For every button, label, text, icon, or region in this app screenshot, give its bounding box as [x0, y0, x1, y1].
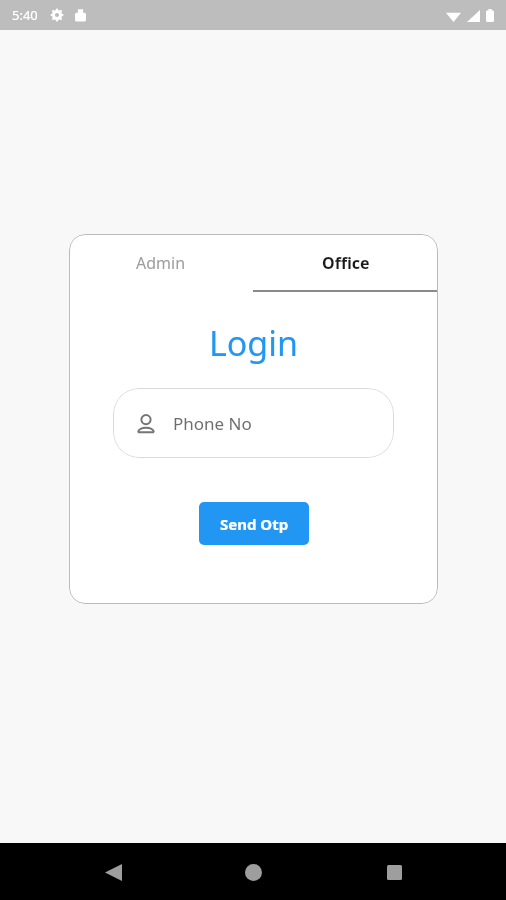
staticText: Admin — [136, 252, 186, 274]
button[interactable]: Office — [253, 234, 438, 292]
button[interactable]: Recents — [366, 844, 422, 900]
staticText: Send Otp — [220, 514, 289, 534]
button[interactable]: Admin — [69, 234, 253, 292]
staticText: Phone No — [173, 412, 252, 435]
other: Person — [135, 413, 157, 435]
staticText: Login — [69, 320, 438, 366]
staticText: 5:40 — [12, 6, 38, 24]
button[interactable]: Person — [113, 388, 394, 458]
button[interactable]: Home — [225, 844, 281, 900]
button[interactable]: Back — [85, 844, 141, 900]
button[interactable]: Send Otp — [199, 502, 309, 545]
staticText: Office — [322, 252, 370, 274]
